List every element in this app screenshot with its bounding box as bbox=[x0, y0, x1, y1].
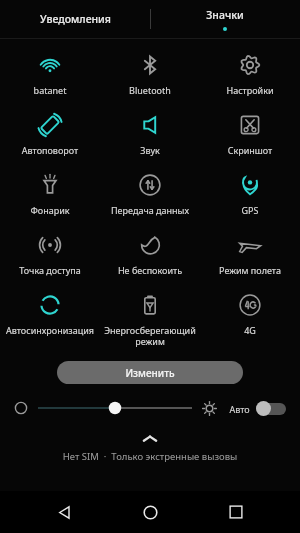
staticText: Значки bbox=[206, 8, 244, 22]
staticText: Авто bbox=[229, 403, 250, 415]
button[interactable]: Автосинхронизация bbox=[0, 285, 100, 357]
staticText: Настройки bbox=[202, 84, 298, 96]
other: High brightness bbox=[202, 401, 217, 416]
staticText: Фонарик bbox=[2, 204, 98, 216]
button[interactable] bbox=[38, 396, 192, 420]
staticText: Точка доступа bbox=[2, 264, 98, 276]
staticText: 4G bbox=[202, 324, 298, 336]
staticText: Изменить bbox=[125, 366, 175, 380]
staticText: Режим полета bbox=[202, 264, 298, 276]
staticText: GPS bbox=[202, 204, 298, 216]
staticText: Нет SIM · Только экстренные вызовы bbox=[0, 450, 300, 463]
button[interactable]: Home bbox=[128, 491, 172, 533]
button[interactable]: Collapse panel bbox=[139, 432, 161, 446]
button[interactable]: Автоповорот bbox=[0, 105, 100, 165]
button[interactable]: Не беспокоить bbox=[100, 225, 200, 285]
button[interactable]: Bluetooth bbox=[100, 45, 200, 105]
button[interactable]: Recents bbox=[214, 491, 258, 533]
button[interactable]: Значки bbox=[150, 0, 300, 38]
staticText: Уведомления bbox=[40, 12, 111, 26]
button[interactable]: GPS bbox=[200, 165, 300, 225]
button[interactable]: Настройки bbox=[200, 45, 300, 105]
staticText: batanet bbox=[2, 84, 98, 96]
button[interactable]: Уведомления bbox=[0, 0, 150, 38]
staticText: Энергосберегающий режим bbox=[102, 324, 198, 347]
button[interactable]: Скриншот bbox=[200, 105, 300, 165]
button[interactable]: Фонарик bbox=[0, 165, 100, 225]
staticText: Bluetooth bbox=[102, 84, 198, 96]
button[interactable]: Back bbox=[42, 491, 86, 533]
staticText: Скриншот bbox=[202, 144, 298, 156]
button[interactable]: Режим полета bbox=[200, 225, 300, 285]
other: Low brightness bbox=[14, 401, 28, 415]
staticText: Автоповорот bbox=[2, 144, 98, 156]
staticText: Автосинхронизация bbox=[2, 324, 98, 336]
button[interactable]: 4G bbox=[200, 285, 300, 357]
staticText: Не беспокоить bbox=[102, 264, 198, 276]
staticText: Звук bbox=[102, 144, 198, 156]
button[interactable]: Передача данных bbox=[100, 165, 200, 225]
button[interactable]: Авто bbox=[229, 401, 286, 416]
button[interactable]: batanet bbox=[0, 45, 100, 105]
button[interactable]: Точка доступа bbox=[0, 225, 100, 285]
button[interactable]: Звук bbox=[100, 105, 200, 165]
staticText: Передача данных bbox=[102, 204, 198, 216]
button[interactable]: Изменить bbox=[57, 361, 243, 384]
button[interactable]: Энергосберегающий режим bbox=[100, 285, 200, 357]
